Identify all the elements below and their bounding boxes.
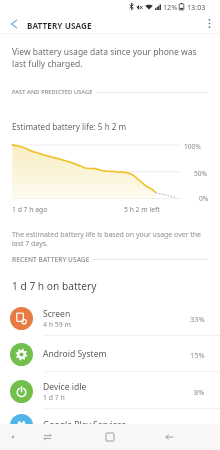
staticText: last fully charged. bbox=[12, 58, 83, 70]
button[interactable]: Android System bbox=[0, 336, 220, 372]
staticText: 33% bbox=[190, 314, 205, 324]
staticText: 0% bbox=[199, 194, 209, 203]
button[interactable]: Screen bbox=[0, 300, 220, 336]
staticText: The estimated battery life is based on y… bbox=[12, 230, 201, 239]
staticText: last 7 days. bbox=[12, 239, 48, 248]
staticText: 5% bbox=[194, 421, 205, 431]
staticText: 8% bbox=[194, 387, 205, 397]
staticText: Device idle bbox=[43, 381, 87, 393]
button[interactable]: Back bbox=[147, 424, 191, 450]
staticText: 12% bbox=[163, 2, 178, 12]
staticText: 5 h 2 m left bbox=[124, 205, 160, 214]
button[interactable]: Google Play Services bbox=[0, 407, 220, 443]
button[interactable]: Show keyboard bbox=[0, 424, 25, 450]
button[interactable]: Recent apps bbox=[25, 424, 69, 450]
staticText: Google Play Services bbox=[43, 419, 126, 431]
staticText: 100% bbox=[184, 142, 201, 151]
staticText: 50% bbox=[194, 169, 208, 178]
staticText: Screen bbox=[43, 308, 71, 320]
staticText: RECENT BATTERY USAGE bbox=[12, 255, 90, 264]
staticText: 1 d 7 h bbox=[43, 393, 65, 402]
staticText: 13:03 bbox=[187, 2, 206, 12]
staticText: BATTERY USAGE bbox=[27, 20, 92, 31]
staticText: 1 d 7 h ago bbox=[12, 205, 48, 214]
staticText: 1 d 7 h on battery bbox=[12, 279, 97, 293]
staticText: View battery usage data since your phone… bbox=[12, 46, 197, 58]
staticText: 15% bbox=[190, 350, 205, 360]
button[interactable]: Device idle bbox=[0, 373, 220, 409]
button[interactable]: Home bbox=[88, 424, 131, 450]
staticText: Android System bbox=[43, 348, 107, 360]
button[interactable]: Navigate up bbox=[3, 13, 25, 34]
staticText: Estimated battery life: 5 h 2 m bbox=[12, 121, 127, 132]
staticText: 4 h 59 m bbox=[43, 320, 71, 329]
button[interactable]: More options bbox=[198, 13, 220, 34]
staticText: PAST AND PREDICTED USAGE bbox=[12, 88, 93, 96]
